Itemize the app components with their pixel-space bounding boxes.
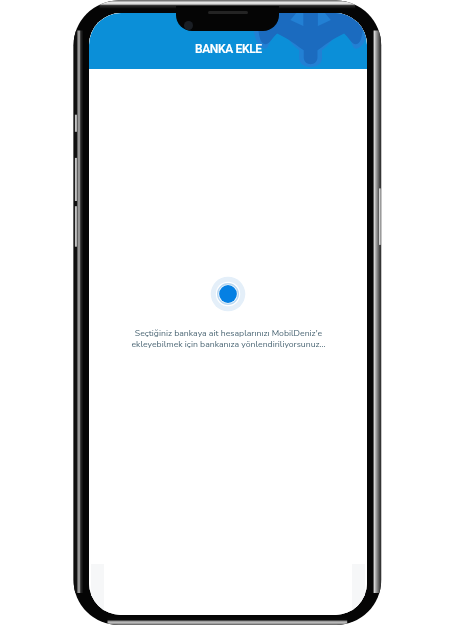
staticText: Seçtiğiniz bankaya ait hesaplarınızı Mob…	[131, 327, 326, 350]
staticText: BANKA EKLE	[195, 42, 262, 56]
